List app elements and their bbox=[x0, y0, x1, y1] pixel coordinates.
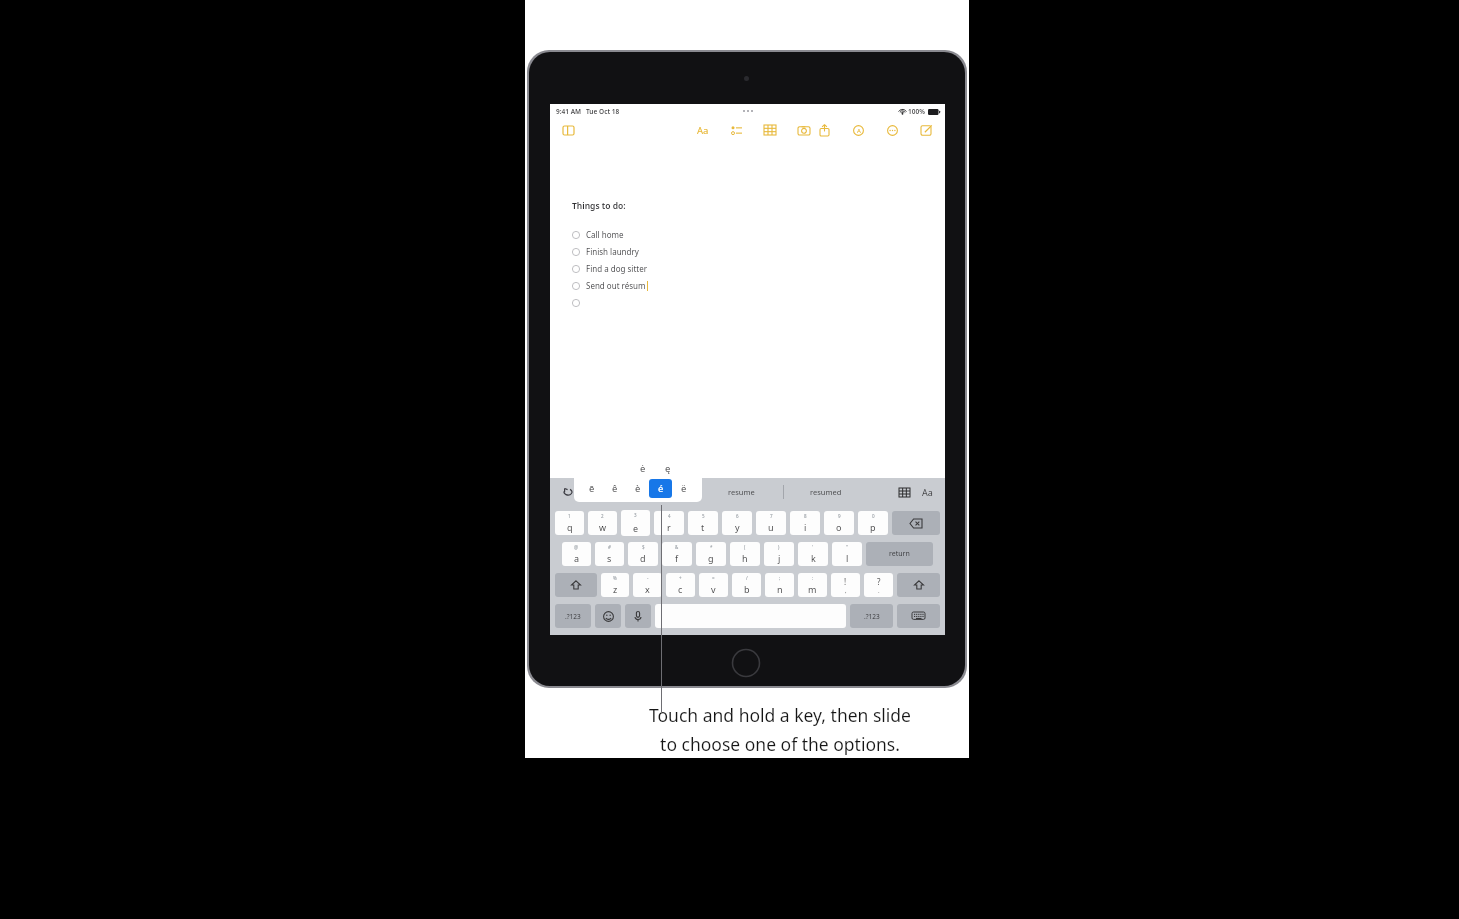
staticText: 0 bbox=[872, 513, 875, 519]
staticText: Things to do: bbox=[572, 200, 626, 212]
button[interactable]: * bbox=[696, 542, 726, 566]
button[interactable]: More bbox=[883, 121, 901, 139]
button[interactable]: ' bbox=[798, 542, 828, 566]
button[interactable]: ę bbox=[655, 460, 680, 477]
button[interactable]: .?123 bbox=[555, 604, 591, 628]
staticText: è bbox=[635, 482, 641, 495]
button[interactable]: ? bbox=[864, 573, 893, 597]
button[interactable]: resume bbox=[699, 482, 783, 502]
button[interactable]: Call home bbox=[572, 226, 624, 243]
staticText: f bbox=[675, 552, 679, 564]
button[interactable]: 9 bbox=[824, 511, 854, 535]
staticText: Tue Oct 18 bbox=[586, 107, 620, 116]
staticText: 8 bbox=[804, 513, 807, 519]
button[interactable]: / bbox=[732, 573, 761, 597]
staticText: , bbox=[845, 587, 847, 595]
staticText: / bbox=[746, 575, 748, 581]
button[interactable]: # bbox=[595, 542, 624, 566]
button[interactable]: Delete bbox=[892, 511, 940, 535]
staticText: & bbox=[675, 544, 679, 550]
button[interactable]: 3 bbox=[621, 510, 650, 536]
staticText: 2 bbox=[601, 513, 604, 519]
staticText: l bbox=[846, 552, 849, 564]
staticText: ; bbox=[779, 575, 781, 581]
staticText: ë bbox=[681, 482, 687, 495]
button[interactable]: Checklist bbox=[727, 121, 745, 139]
button[interactable]: : bbox=[798, 573, 827, 597]
button[interactable]: Table bbox=[761, 121, 779, 139]
button[interactable]: - bbox=[633, 573, 662, 597]
button[interactable]: Format bbox=[694, 121, 712, 139]
button[interactable]: New note bbox=[917, 121, 935, 139]
button[interactable]: Space bbox=[655, 604, 846, 628]
button[interactable]: ë bbox=[672, 479, 695, 498]
button[interactable]: Dictation bbox=[625, 604, 651, 628]
button[interactable]: 4 bbox=[654, 511, 684, 535]
button[interactable]: Find a dog sitter bbox=[572, 260, 647, 277]
button[interactable]: Sidebar bbox=[559, 121, 577, 139]
button[interactable]: .?123 bbox=[850, 604, 893, 628]
button[interactable]: ( bbox=[730, 542, 760, 566]
button[interactable]: return bbox=[866, 542, 933, 566]
staticText: + bbox=[679, 575, 682, 581]
button[interactable]: 2 bbox=[588, 511, 617, 535]
button[interactable]: $ bbox=[628, 542, 658, 566]
button[interactable]: 5 bbox=[688, 511, 718, 535]
staticText: e bbox=[633, 522, 639, 534]
button[interactable]: " bbox=[832, 542, 862, 566]
button[interactable]: 7 bbox=[756, 511, 786, 535]
staticText: % bbox=[613, 575, 617, 581]
staticText: .?123 bbox=[565, 612, 581, 621]
staticText: 4 bbox=[668, 513, 671, 519]
staticText: k bbox=[811, 552, 816, 564]
staticText: s bbox=[607, 552, 612, 564]
button[interactable]: 6 bbox=[722, 511, 752, 535]
staticText: p bbox=[870, 521, 876, 533]
staticText: g bbox=[708, 552, 714, 564]
button[interactable]: Table bbox=[896, 484, 912, 500]
staticText: i bbox=[804, 521, 807, 533]
button[interactable]: ; bbox=[765, 573, 794, 597]
button[interactable]: Shift bbox=[555, 573, 597, 597]
button[interactable]: Share bbox=[815, 121, 833, 139]
button[interactable]: Send out résum bbox=[572, 277, 648, 294]
staticText: z bbox=[613, 583, 618, 595]
button[interactable]: Finish laundry bbox=[572, 243, 639, 260]
button[interactable]: Emoji bbox=[595, 604, 621, 628]
button[interactable]: % bbox=[601, 573, 629, 597]
button[interactable]: Markup bbox=[849, 121, 867, 139]
button[interactable]: Aa bbox=[919, 484, 935, 500]
button[interactable]: ) bbox=[764, 542, 794, 566]
button[interactable]: Undo bbox=[560, 484, 576, 500]
button[interactable]: 0 bbox=[858, 511, 888, 535]
button[interactable]: ė bbox=[630, 460, 655, 477]
staticText: : bbox=[812, 575, 814, 581]
button[interactable]: è bbox=[626, 479, 649, 498]
button[interactable]: resumed bbox=[784, 482, 868, 502]
button[interactable]: é bbox=[649, 479, 672, 498]
button[interactable]: + bbox=[666, 573, 695, 597]
button[interactable]: ē bbox=[580, 479, 603, 498]
button[interactable]: ! bbox=[831, 573, 860, 597]
staticText: Send out résum bbox=[586, 280, 646, 291]
staticText: t bbox=[701, 521, 705, 533]
staticText: r bbox=[667, 521, 671, 533]
staticText: Call home bbox=[586, 229, 624, 240]
button[interactable]: 8 bbox=[790, 511, 820, 535]
staticText: 6 bbox=[736, 513, 739, 519]
staticText: ? bbox=[877, 576, 881, 587]
button[interactable]: Hide keyboard bbox=[897, 604, 940, 628]
button[interactable]: & bbox=[662, 542, 692, 566]
staticText: A bbox=[857, 127, 861, 135]
button[interactable]: = bbox=[699, 573, 728, 597]
staticText: resumed bbox=[810, 487, 842, 497]
staticText: " bbox=[846, 544, 848, 550]
staticText: Touch and hold a key, then slide bbox=[649, 703, 911, 727]
button[interactable]: @ bbox=[562, 542, 591, 566]
staticText: d bbox=[640, 552, 646, 564]
button[interactable]: ê bbox=[603, 479, 626, 498]
staticText: . bbox=[878, 587, 880, 595]
button[interactable]: 1 bbox=[555, 511, 584, 535]
button[interactable]: Shift bbox=[897, 573, 940, 597]
button[interactable]: Camera bbox=[795, 121, 813, 139]
